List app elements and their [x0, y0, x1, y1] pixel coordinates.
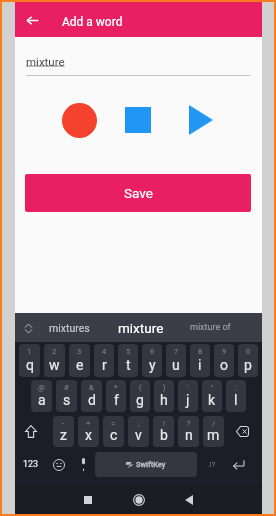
- staticText: o: [220, 357, 228, 373]
- staticText: z: [60, 427, 67, 443]
- button[interactable]: ': [178, 380, 198, 412]
- staticText: &: [89, 383, 94, 392]
- staticText: #: [64, 383, 69, 392]
- staticText: i: [198, 357, 202, 373]
- staticText: c: [110, 427, 118, 443]
- button[interactable]: (: [130, 380, 150, 412]
- button[interactable]: Back: [175, 486, 203, 514]
- staticText: 0: [246, 347, 251, 356]
- staticText: e: [76, 357, 84, 373]
- button[interactable]: !: [153, 416, 174, 447]
- button[interactable]: mixture: [108, 313, 174, 342]
- button[interactable]: 2: [44, 344, 65, 377]
- staticText: Save: [124, 185, 153, 201]
- button[interactable]: Recents: [74, 486, 102, 514]
- staticText: m: [207, 427, 220, 443]
- staticText: 3: [77, 347, 82, 356]
- button[interactable]: :: [226, 380, 246, 412]
- staticText: @: [38, 383, 45, 392]
- staticText: r: [102, 357, 107, 373]
- staticText: k: [208, 392, 216, 408]
- button[interactable]: 4: [94, 344, 114, 377]
- button[interactable]: Voice input: [72, 452, 94, 477]
- staticText: mixture: [26, 55, 65, 68]
- button[interactable]: Play: [189, 105, 213, 135]
- button[interactable]: 0: [238, 344, 258, 377]
- staticText: w: [49, 357, 60, 373]
- button[interactable]: 3: [69, 344, 90, 377]
- staticText: 4: [102, 347, 107, 356]
- staticText: SwiftKey: [136, 460, 166, 469]
- button[interactable]: .!?: [199, 452, 223, 477]
- button[interactable]: 5: [118, 344, 138, 377]
- button[interactable]: Home: [125, 486, 153, 514]
- button[interactable]: ": [202, 380, 222, 412]
- button[interactable]: Red circle: [62, 103, 97, 138]
- staticText: mixture: [118, 320, 164, 336]
- staticText: t: [126, 357, 131, 373]
- button[interactable]: Save: [25, 174, 251, 212]
- button[interactable]: 7: [166, 344, 186, 377]
- staticText: l: [234, 392, 238, 408]
- staticText: (: [139, 383, 142, 392]
- button[interactable]: 6: [142, 344, 162, 377]
- staticText: *: [114, 383, 118, 392]
- staticText: +: [86, 419, 91, 428]
- staticText: /: [212, 419, 216, 428]
- staticText: ': [187, 383, 189, 392]
- staticText: b: [160, 427, 168, 443]
- staticText: 1: [27, 347, 32, 356]
- staticText: -: [62, 419, 65, 428]
- staticText: y: [149, 357, 156, 373]
- staticText: u: [172, 357, 180, 373]
- button[interactable]: 1: [19, 344, 40, 377]
- button[interactable]: 8: [190, 344, 210, 377]
- staticText: mixtures: [49, 322, 90, 334]
- staticText: 123: [23, 459, 39, 470]
- button[interactable]: ;: [128, 416, 149, 447]
- staticText: v: [135, 427, 142, 443]
- button[interactable]: ): [154, 380, 174, 412]
- staticText: a: [38, 392, 46, 408]
- button[interactable]: Enter: [225, 452, 251, 477]
- staticText: x: [85, 427, 92, 443]
- staticText: :: [235, 383, 237, 392]
- staticText: s: [63, 392, 71, 408]
- staticText: n: [185, 427, 193, 443]
- button[interactable]: SwiftKey: [95, 452, 197, 477]
- staticText: h: [160, 392, 168, 408]
- staticText: g: [136, 392, 144, 408]
- staticText: =: [111, 419, 116, 428]
- staticText: q: [26, 357, 34, 373]
- staticText: 8: [198, 347, 203, 356]
- staticText: p: [244, 357, 252, 373]
- staticText: d: [88, 392, 96, 408]
- button[interactable]: 123: [17, 452, 45, 477]
- button[interactable]: @: [31, 380, 52, 412]
- staticText: !: [163, 419, 165, 428]
- button[interactable]: -: [53, 416, 74, 447]
- button[interactable]: Shift: [17, 416, 53, 447]
- button[interactable]: Back: [21, 9, 43, 31]
- button[interactable]: #: [56, 380, 77, 412]
- staticText: 2: [52, 347, 57, 356]
- button[interactable]: mixture of: [177, 313, 243, 342]
- button[interactable]: Backspace: [224, 416, 260, 447]
- button[interactable]: mixtures: [37, 313, 102, 342]
- button[interactable]: *: [106, 380, 126, 412]
- staticText: Add a word: [62, 15, 123, 29]
- button[interactable]: &: [81, 380, 102, 412]
- staticText: 6: [150, 347, 155, 356]
- staticText: .!?: [208, 461, 215, 469]
- button[interactable]: +: [78, 416, 99, 447]
- button[interactable]: =: [103, 416, 124, 447]
- button[interactable]: 9: [214, 344, 234, 377]
- staticText: ?: [187, 419, 191, 428]
- button[interactable]: Expand suggestions: [20, 320, 36, 336]
- button[interactable]: ?: [178, 416, 199, 447]
- button[interactable]: Emoji: [47, 452, 71, 477]
- button[interactable]: /: [203, 416, 224, 447]
- staticText: 7: [174, 347, 179, 356]
- staticText: mixture of: [190, 322, 231, 333]
